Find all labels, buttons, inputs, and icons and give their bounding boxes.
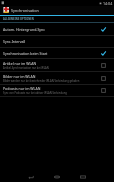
button[interactable]: Recent apps: [73, 172, 93, 182]
staticText: 14:04: [103, 1, 113, 6]
button[interactable]: Bilder nur im WLAN: [0, 72, 114, 85]
button[interactable]: Back: [21, 172, 41, 182]
staticText: Synchronisation beim Start: [3, 51, 48, 56]
staticText: Bilder werden nur bei bestehender WLAN-V…: [3, 79, 80, 83]
staticText: Autom. Hintergrund-Sync: [3, 27, 45, 32]
staticText: Podcasts nur im WLAN: [3, 86, 41, 91]
staticText: Synchronisation: [11, 8, 39, 13]
button[interactable]: Home: [47, 172, 67, 182]
staticText: Sync von Podcasts nur bei aktiver WLAN-V…: [3, 91, 67, 95]
button[interactable]: Synchronisation beim Start: [0, 48, 114, 59]
button[interactable]: Sync-Intervall: [0, 36, 114, 48]
staticText: Artikel nur im WLAN: [3, 61, 37, 66]
button[interactable]: Autom. Hintergrund-Sync: [0, 23, 114, 36]
staticText: Artikel-Synchronisation nur bei WLAN: [3, 66, 49, 70]
staticText: ALLGEMEINE OPTIONEN: [3, 17, 34, 20]
staticText: Sync-Intervall: [3, 39, 26, 44]
button[interactable]: Podcasts nur im WLAN: [0, 85, 114, 97]
staticText: Bilder nur im WLAN: [3, 74, 36, 79]
button[interactable]: Artikel nur im WLAN: [0, 59, 114, 72]
